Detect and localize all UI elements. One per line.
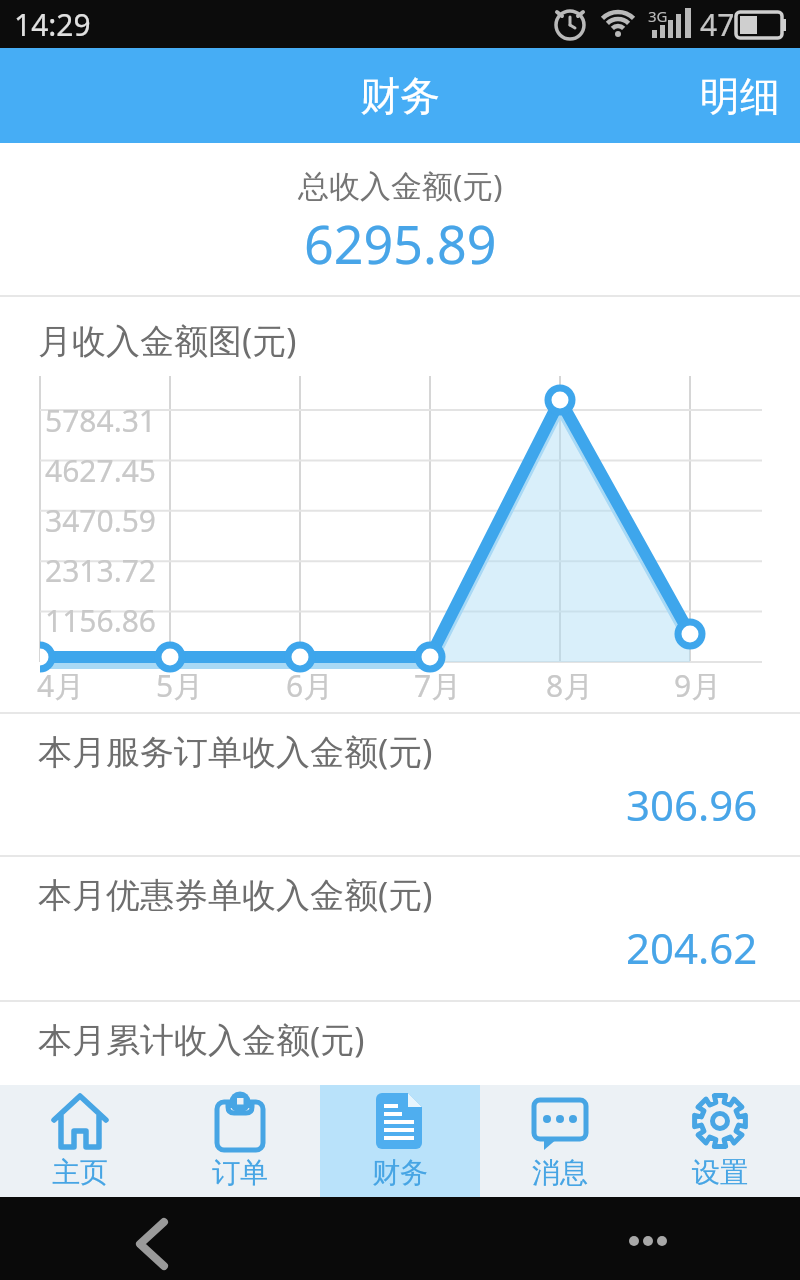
staticText: 47 bbox=[700, 4, 735, 45]
staticText: 本月优惠券单收入金额(元) bbox=[38, 871, 433, 917]
staticText: 14:29 bbox=[14, 4, 91, 45]
staticText: 5784.31 bbox=[45, 400, 156, 441]
staticText: 财务 bbox=[372, 1155, 428, 1190]
staticText: 主页 bbox=[52, 1155, 108, 1190]
staticText: 财务 bbox=[360, 71, 440, 121]
staticText: 订单 bbox=[212, 1155, 268, 1190]
button[interactable]: 财务 bbox=[320, 1085, 480, 1197]
button[interactable] bbox=[618, 1209, 678, 1269]
staticText: 1156.86 bbox=[45, 600, 156, 641]
staticText: 消息 bbox=[532, 1155, 588, 1190]
staticText: 306.96 bbox=[626, 776, 758, 826]
button[interactable]: 本月优惠券单收入金额(元) bbox=[0, 869, 800, 1012]
button[interactable]: 本月服务订单收入金额(元) bbox=[0, 726, 800, 869]
staticText: 4月 bbox=[37, 665, 85, 706]
button[interactable]: 设置 bbox=[640, 1085, 800, 1197]
button[interactable]: 订单 bbox=[160, 1085, 320, 1197]
button[interactable]: 明细 bbox=[700, 48, 780, 143]
button[interactable] bbox=[120, 1209, 180, 1269]
staticText: 7月 bbox=[414, 665, 462, 706]
staticText: 6月 bbox=[286, 665, 334, 706]
staticText: 3G bbox=[648, 6, 668, 26]
staticText: 月收入金额图(元) bbox=[38, 317, 297, 363]
staticText: 本月累计收入金额(元) bbox=[38, 1016, 365, 1062]
staticText: 5月 bbox=[156, 665, 204, 706]
staticText: 204.62 bbox=[626, 919, 758, 969]
staticText: 8月 bbox=[546, 665, 594, 706]
button[interactable]: 主页 bbox=[0, 1085, 160, 1197]
staticText: 3470.59 bbox=[45, 500, 156, 541]
staticText: 2313.72 bbox=[45, 550, 156, 591]
staticText: 9月 bbox=[674, 665, 722, 706]
staticText: 明细 bbox=[700, 71, 780, 121]
button[interactable]: 消息 bbox=[480, 1085, 640, 1197]
button[interactable]: 本月累计收入金额(元) bbox=[0, 1014, 800, 1157]
staticText: 本月服务订单收入金额(元) bbox=[38, 728, 433, 774]
staticText: 总收入金额(元) bbox=[298, 164, 503, 206]
staticText: 6295.89 bbox=[304, 208, 497, 279]
staticText: 设置 bbox=[692, 1155, 748, 1190]
staticText: 4627.45 bbox=[45, 450, 156, 491]
